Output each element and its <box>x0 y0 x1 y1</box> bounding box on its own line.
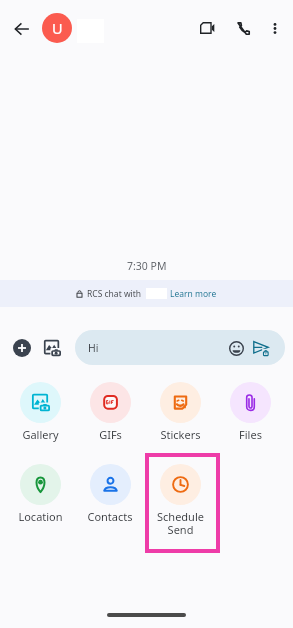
button[interactable]: Stickers <box>145 378 215 449</box>
staticText: Hi <box>88 341 99 355</box>
staticText: Location <box>18 509 63 524</box>
staticText: Stickers <box>160 427 201 442</box>
staticText: RCS chat with <box>87 288 142 300</box>
button[interactable]: Add <box>8 334 35 361</box>
button[interactable]: Schedule Send <box>145 460 215 550</box>
button[interactable]: Files <box>215 378 285 449</box>
button[interactable]: Send <box>249 336 273 360</box>
staticText: Contacts <box>87 509 133 524</box>
button[interactable]: Hi <box>75 330 285 365</box>
button[interactable]: RCS chat with <box>0 280 293 307</box>
staticText: Learn more <box>170 288 217 300</box>
staticText: Files <box>239 427 262 442</box>
button[interactable]: Emoji <box>224 336 248 360</box>
staticText: 7:30 PM <box>127 259 167 271</box>
button[interactable]: Contacts <box>75 460 145 550</box>
staticText: Gallery <box>22 427 59 442</box>
button[interactable]: Location <box>5 460 75 550</box>
staticText: Schedule Send <box>157 509 204 537</box>
button[interactable]: Gallery and camera <box>38 334 65 361</box>
button[interactable]: More options <box>260 13 290 43</box>
button[interactable]: GIFs <box>75 378 145 449</box>
button[interactable]: Gallery <box>5 378 75 449</box>
button[interactable]: Back <box>6 13 37 44</box>
staticText: GIFs <box>99 427 122 442</box>
staticText: U <box>52 18 63 38</box>
button[interactable]: Call <box>228 13 258 43</box>
button[interactable]: U <box>42 13 72 43</box>
button[interactable]: Video call <box>192 13 222 43</box>
